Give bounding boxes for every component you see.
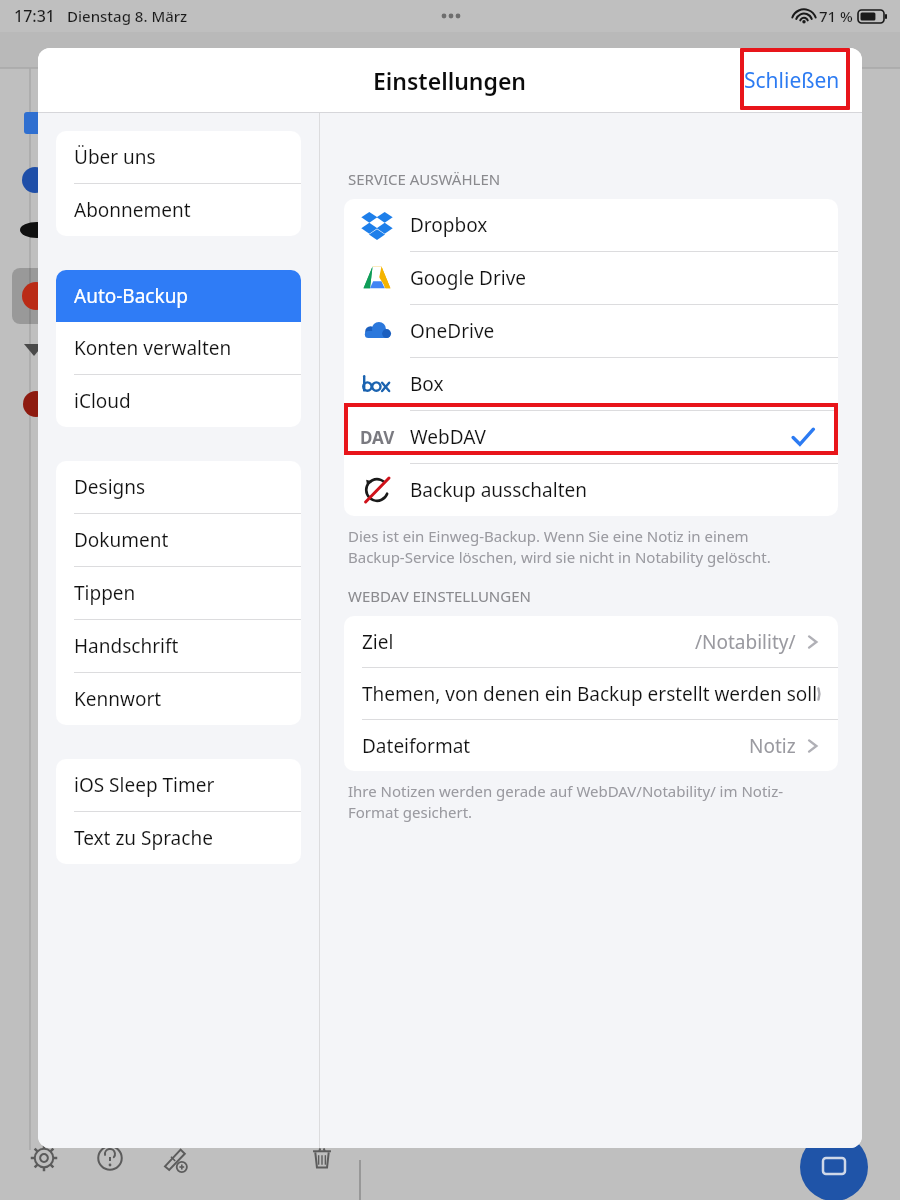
button[interactable]: Designs	[56, 461, 301, 513]
staticText: Abonnement	[74, 197, 191, 223]
button[interactable]: Box	[344, 358, 838, 410]
button[interactable]: Backup ausschalten	[344, 464, 838, 516]
staticText: Box	[410, 371, 444, 397]
button[interactable]: Konten verwalten	[56, 322, 301, 374]
staticText: 17:31	[14, 5, 55, 27]
staticText: Über uns	[74, 144, 156, 170]
staticText: Ziel	[362, 629, 394, 655]
button[interactable]: iOS Sleep Timer	[56, 759, 301, 811]
staticText: SERVICE AUSWÄHLEN	[348, 169, 501, 189]
button[interactable]: Google Drive	[344, 252, 838, 304]
staticText: WEBDAV EINSTELLUNGEN	[348, 586, 531, 606]
staticText: iOS Sleep Timer	[74, 772, 215, 798]
staticText: Kennwort	[74, 686, 162, 712]
staticText: WebDAV	[410, 424, 486, 450]
staticText: DAV	[360, 426, 395, 449]
staticText: Notiz	[749, 733, 796, 759]
button[interactable]: Tippen	[56, 567, 301, 619]
button[interactable]: DAV	[344, 411, 838, 463]
button[interactable]: Dokument	[56, 514, 301, 566]
button[interactable]: Auto-Backup	[56, 270, 301, 322]
button[interactable]: Über uns	[56, 131, 301, 183]
staticText: Einstellungen	[373, 65, 527, 96]
button[interactable]: New note	[152, 1136, 196, 1180]
staticText: Konten verwalten	[74, 335, 232, 361]
button[interactable]: Dropbox	[344, 199, 838, 251]
staticText: Dienstag 8. März	[67, 6, 188, 26]
button[interactable]: OneDrive	[344, 305, 838, 357]
staticText: Themen, von denen ein Backup erstellt we…	[362, 681, 818, 707]
staticText: Google Drive	[410, 265, 527, 291]
button[interactable]: Settings	[22, 1136, 66, 1180]
staticText: Dateiformat	[362, 733, 471, 759]
staticText: Dropbox	[410, 212, 488, 238]
button[interactable]: Schließen	[744, 66, 840, 95]
button[interactable]: Handschrift	[56, 620, 301, 672]
staticText: Auto-Backup	[74, 283, 189, 309]
staticText: Text zu Sprache	[74, 825, 213, 851]
button[interactable]: Ziel	[362, 616, 820, 667]
button[interactable]: Text zu Sprache	[56, 812, 301, 864]
button[interactable]: Dateiformat	[362, 720, 820, 771]
staticText: Handschrift	[74, 633, 179, 659]
button[interactable]: Help	[88, 1136, 132, 1180]
staticText: Dies ist ein Einweg-Backup. Wenn Sie ein…	[348, 526, 771, 568]
button[interactable]: Delete	[300, 1136, 344, 1180]
staticText: OneDrive	[410, 318, 495, 344]
button[interactable]: New note	[800, 1133, 868, 1200]
staticText: Tippen	[74, 580, 136, 606]
staticText: /Notability/	[695, 629, 796, 655]
staticText: Backup ausschalten	[410, 477, 587, 503]
staticText: Schließen	[744, 66, 840, 95]
staticText: Dokument	[74, 527, 169, 553]
button[interactable]: Kennwort	[56, 673, 301, 725]
button[interactable]: Abonnement	[56, 184, 301, 236]
staticText: 71 %	[819, 6, 853, 26]
staticText: iCloud	[74, 388, 131, 414]
button[interactable]: iCloud	[56, 375, 301, 427]
staticText: Ihre Notizen werden gerade auf WebDAV/No…	[348, 781, 784, 823]
staticText: Designs	[74, 474, 146, 500]
button[interactable]: Themen, von denen ein Backup erstellt we…	[362, 668, 820, 719]
